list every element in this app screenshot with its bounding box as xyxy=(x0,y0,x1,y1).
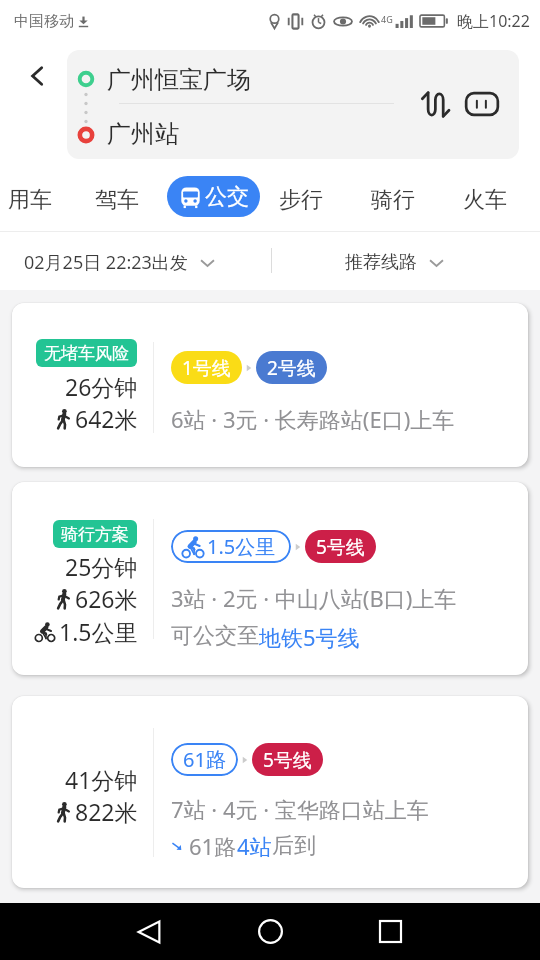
staticText: 中国移动 xyxy=(14,12,74,31)
button[interactable]: 推荐线路 xyxy=(343,242,447,283)
staticText: 公交 xyxy=(205,183,249,211)
button[interactable]: 步行 xyxy=(268,168,334,232)
button[interactable]: 公交 xyxy=(167,176,260,217)
staticText: 1号线 xyxy=(182,355,231,381)
staticText: 5号线 xyxy=(263,747,312,773)
staticText: 1.5公里 xyxy=(59,616,138,647)
button[interactable]: 广州恒宝广场 xyxy=(67,50,519,159)
button[interactable]: 火车 xyxy=(452,168,518,232)
staticText: 1.5公里 xyxy=(207,533,276,560)
staticText: 广州站 xyxy=(107,119,179,149)
staticText: 广州恒宝广场 xyxy=(107,65,251,95)
staticText: 3站 · 2元 · 中山八站(B口)上车 xyxy=(171,583,457,613)
staticText: 驾车 xyxy=(95,186,139,214)
button[interactable]: Swap direction xyxy=(412,82,456,126)
staticText: 02月25日 22:23出发 xyxy=(24,250,188,275)
staticText: 可公交至 xyxy=(171,622,259,650)
staticText: 41分钟 xyxy=(65,764,138,795)
button[interactable]: 无堵车风险 xyxy=(12,303,528,467)
staticText: 61路 xyxy=(183,746,226,773)
staticText: 26分钟 xyxy=(65,371,138,402)
button[interactable]: 用车 xyxy=(0,168,60,232)
button[interactable]: Back xyxy=(8,50,66,102)
staticText: 4G xyxy=(381,13,393,25)
staticText: 用车 xyxy=(8,186,52,214)
staticText: 7站 · 4元 · 宝华路口站上车 xyxy=(171,794,429,824)
staticText: 无堵车风险 xyxy=(44,343,129,364)
staticText: 5号线 xyxy=(316,534,365,560)
button[interactable]: Route options xyxy=(460,82,504,126)
button[interactable]: 骑行 xyxy=(360,168,426,232)
staticText: 后到 xyxy=(272,832,316,860)
staticText: 步行 xyxy=(279,186,323,214)
staticText: 晚上10:22 xyxy=(457,10,530,32)
staticText: 626米 xyxy=(75,583,138,614)
staticText: 642米 xyxy=(75,403,138,434)
staticText: 2号线 xyxy=(267,355,316,381)
staticText: 4站 xyxy=(237,831,272,861)
button[interactable]: Home xyxy=(242,903,298,960)
button[interactable]: Back xyxy=(122,903,178,960)
button[interactable]: 02月25日 22:23出发 xyxy=(22,241,218,284)
staticText: 骑行 xyxy=(371,186,415,214)
staticText: 骑行方案 xyxy=(61,524,129,545)
staticText: 地铁5号线 xyxy=(259,622,360,652)
staticText: 25分钟 xyxy=(65,551,138,582)
staticText: 火车 xyxy=(463,186,507,214)
button[interactable]: 41分钟 xyxy=(12,696,528,888)
button[interactable]: Recent apps xyxy=(362,903,418,960)
staticText: 6站 · 3元 · 长寿路站(E口)上车 xyxy=(171,404,455,434)
button[interactable]: 骑行方案 xyxy=(12,482,528,675)
button[interactable]: 驾车 xyxy=(74,168,160,232)
staticText: 推荐线路 xyxy=(345,251,417,274)
staticText: 822米 xyxy=(75,796,138,827)
staticText: 61路 xyxy=(189,831,237,861)
